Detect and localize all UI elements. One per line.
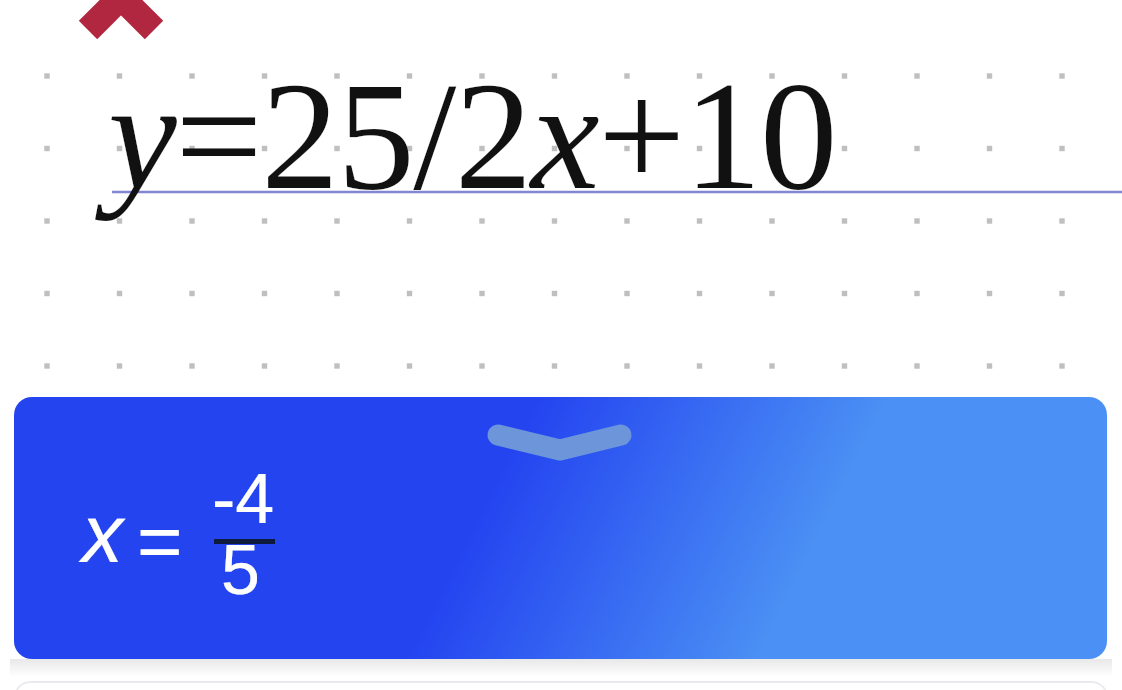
staticText: 5 xyxy=(221,531,260,609)
staticText: y=25/2x+10 xyxy=(108,50,836,222)
button[interactable] xyxy=(14,681,1108,690)
staticText: x xyxy=(82,488,123,580)
staticText: = xyxy=(137,497,183,584)
staticText: -4 xyxy=(212,460,275,538)
button[interactable]: x xyxy=(14,397,1107,659)
